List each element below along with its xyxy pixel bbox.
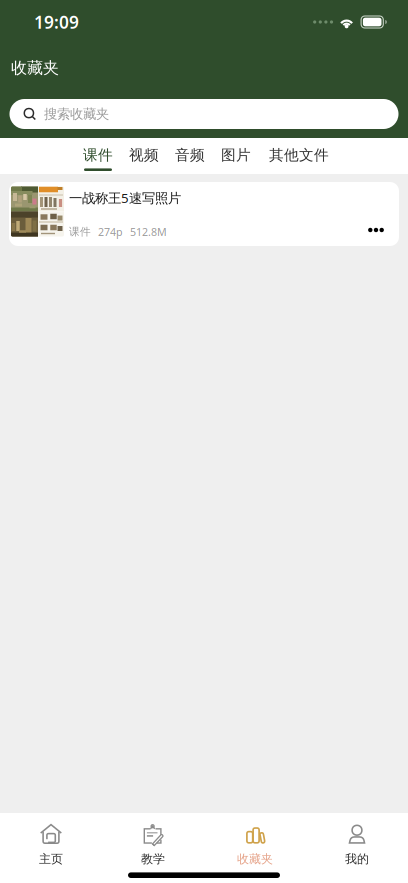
- staticText: 512.8M: [130, 225, 167, 239]
- staticText: 收藏夹: [237, 852, 273, 866]
- staticText: 收藏夹: [11, 58, 59, 78]
- button[interactable]: 我的: [306, 813, 408, 865]
- staticText: 我的: [345, 852, 369, 866]
- button[interactable]: 收藏夹: [204, 813, 306, 865]
- staticText: 教学: [141, 852, 165, 866]
- button[interactable]: 音频: [175, 138, 205, 174]
- staticText: 274p: [98, 225, 123, 239]
- staticText: 主页: [39, 852, 63, 866]
- button[interactable]: 视频: [129, 138, 159, 174]
- staticText: 一战称王5速写照片: [69, 189, 181, 207]
- staticText: 其他文件: [269, 146, 329, 164]
- staticText: 搜索收藏夹: [44, 106, 109, 122]
- staticText: 图片: [221, 146, 251, 164]
- button[interactable]: 图片: [221, 138, 251, 174]
- button[interactable]: 教学: [102, 813, 204, 865]
- button[interactable]: 搜索收藏夹: [9, 99, 398, 129]
- button[interactable]: 主页: [0, 813, 102, 865]
- button[interactable]: 其他文件: [269, 138, 329, 174]
- button[interactable]: 一战称王5速写照片: [9, 182, 399, 246]
- staticText: 视频: [129, 146, 159, 164]
- staticText: 音频: [175, 146, 205, 164]
- staticText: 课件: [69, 225, 91, 238]
- staticText: 课件: [83, 146, 113, 164]
- button[interactable]: 课件: [83, 138, 113, 174]
- staticText: 19:09: [34, 10, 79, 33]
